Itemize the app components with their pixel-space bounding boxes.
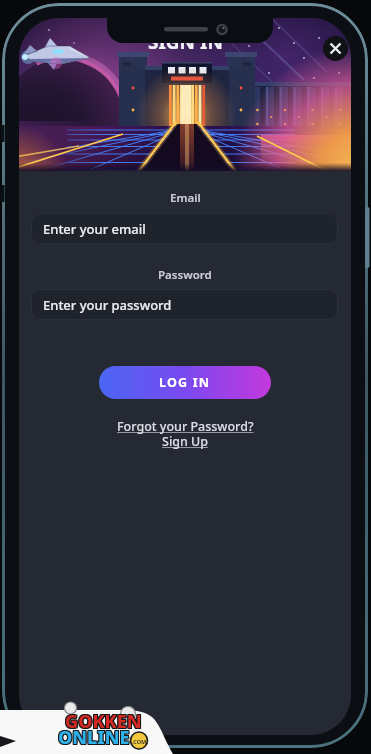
- staticText: Enter your password: [43, 296, 172, 314]
- staticText: ONLINE: [59, 725, 131, 750]
- button[interactable]: [323, 36, 348, 61]
- staticText: GOKKEN: [65, 709, 142, 734]
- staticText: ONLINE: [57, 725, 129, 750]
- button[interactable]: Forgot your Password?: [19, 418, 351, 435]
- staticText: GOKKEN: [64, 710, 141, 735]
- staticText: Email: [170, 190, 201, 206]
- staticText: ONLINE: [58, 725, 130, 750]
- staticText: GOKKEN: [64, 708, 141, 733]
- button[interactable]: LOG IN: [99, 366, 271, 399]
- staticText: .COM: [132, 738, 147, 745]
- staticText: GOKKEN: [66, 710, 143, 735]
- staticText: Enter your email: [43, 220, 146, 238]
- staticText: ONLINE: [57, 726, 129, 751]
- staticText: ONLINE: [57, 724, 129, 749]
- button[interactable]: Sign Up: [19, 433, 351, 450]
- staticText: LOG IN: [159, 374, 211, 391]
- staticText: Password: [158, 267, 212, 283]
- staticText: SIGN IN: [148, 29, 223, 55]
- staticText: GOKKEN: [65, 710, 142, 735]
- staticText: GOKKEN: [66, 709, 143, 734]
- staticText: Forgot your Password?: [117, 418, 254, 435]
- staticText: ONLINE: [59, 724, 131, 749]
- staticText: ONLINE: [58, 724, 130, 749]
- button[interactable]: Enter your password: [31, 289, 338, 320]
- staticText: GOKKEN: [64, 709, 141, 734]
- staticText: GOKKEN: [65, 708, 142, 733]
- staticText: Sign Up: [162, 433, 209, 450]
- button[interactable]: Enter your email: [31, 213, 338, 244]
- staticText: ONLINE: [59, 726, 131, 751]
- staticText: GOKKEN: [66, 708, 143, 733]
- staticText: ONLINE: [58, 726, 130, 751]
